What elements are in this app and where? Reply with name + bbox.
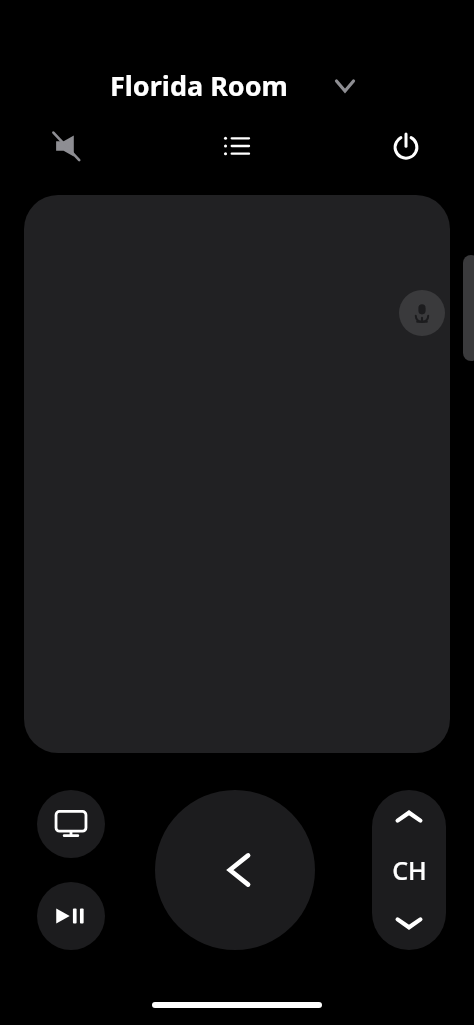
staticText: CH <box>392 853 427 887</box>
button[interactable]: Channel list <box>208 118 266 174</box>
button[interactable]: Voice search <box>399 290 445 336</box>
button[interactable]: Back <box>155 790 315 950</box>
button[interactable]: Channel down <box>372 896 446 950</box>
button[interactable]: Mute <box>38 118 96 174</box>
button[interactable]: Input source <box>37 790 105 858</box>
staticText: Florida Room <box>110 67 288 104</box>
button[interactable]: Florida Room <box>110 62 370 108</box>
button[interactable]: Channel up <box>372 790 446 844</box>
button[interactable]: Power <box>377 118 435 174</box>
button[interactable]: Play or pause <box>37 882 105 950</box>
